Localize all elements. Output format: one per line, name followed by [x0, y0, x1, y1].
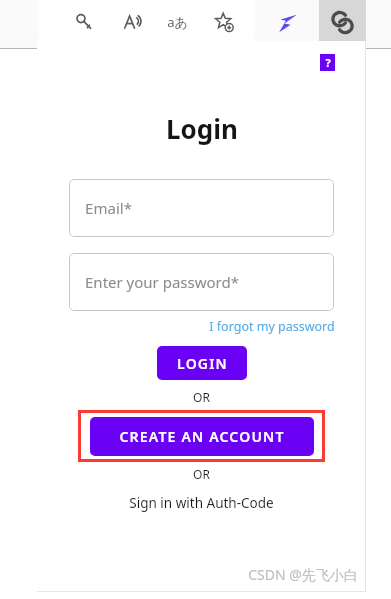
button[interactable]: Help [320, 54, 335, 71]
staticText: ? [325, 55, 331, 70]
staticText: Email* [85, 198, 132, 218]
button[interactable]: Extension [273, 8, 303, 38]
staticText: Sign in with Auth-Code [129, 494, 274, 512]
button[interactable]: Password manager [73, 10, 97, 34]
staticText: OR [193, 466, 210, 482]
button[interactable]: Sign in with Auth-Code [129, 494, 274, 512]
staticText: CREATE AN ACCOUNT [119, 427, 285, 446]
staticText: I forgot my password [209, 318, 335, 335]
button[interactable]: LOGIN [157, 346, 247, 380]
staticText: Enter your password* [85, 272, 239, 292]
staticText: aあ [167, 13, 188, 31]
button[interactable]: Translate [165, 10, 189, 34]
staticText: OR [193, 389, 210, 405]
button[interactable]: Open extension [319, 0, 366, 44]
button[interactable]: Add to favorites [212, 10, 236, 34]
button[interactable]: Email* [69, 179, 334, 237]
button[interactable]: Read aloud [120, 10, 144, 34]
button[interactable]: I forgot my password [209, 318, 335, 335]
button[interactable]: CREATE AN ACCOUNT [90, 417, 314, 456]
staticText: Login [166, 111, 238, 146]
button[interactable]: Enter your password* [69, 253, 334, 311]
staticText: CSDN @先飞小白 [248, 565, 358, 584]
staticText: LOGIN [177, 354, 228, 373]
